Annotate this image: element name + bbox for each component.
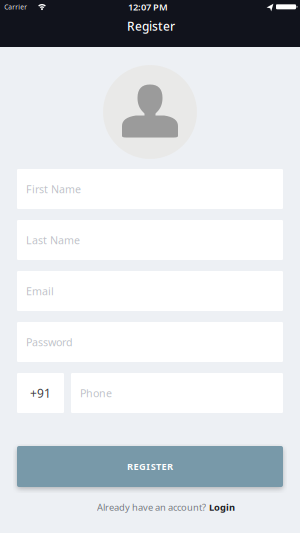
button[interactable]: REGISTER <box>17 446 283 487</box>
button[interactable]: Password text field <box>17 322 283 362</box>
staticText: Login <box>209 501 235 513</box>
staticText: REGISTER <box>127 460 173 473</box>
staticText: Last Name <box>26 233 80 247</box>
staticText: 12:07 PM <box>128 1 168 13</box>
button[interactable]: Last Name text field <box>17 220 283 260</box>
staticText: Register <box>127 18 175 34</box>
staticText: Carrier <box>4 3 27 11</box>
button[interactable]: Phone text field <box>71 373 283 413</box>
button[interactable]: +91 <box>17 373 64 413</box>
staticText: Password <box>26 335 73 349</box>
button[interactable]: Login <box>209 501 235 513</box>
button[interactable]: Email text field <box>17 271 283 311</box>
staticText: Already have an account? <box>97 501 206 513</box>
staticText: Email <box>26 284 54 298</box>
staticText: First Name <box>26 182 81 196</box>
staticText: Phone <box>80 386 112 400</box>
staticText: +91 <box>30 385 51 401</box>
button[interactable]: First Name text field <box>17 169 283 209</box>
